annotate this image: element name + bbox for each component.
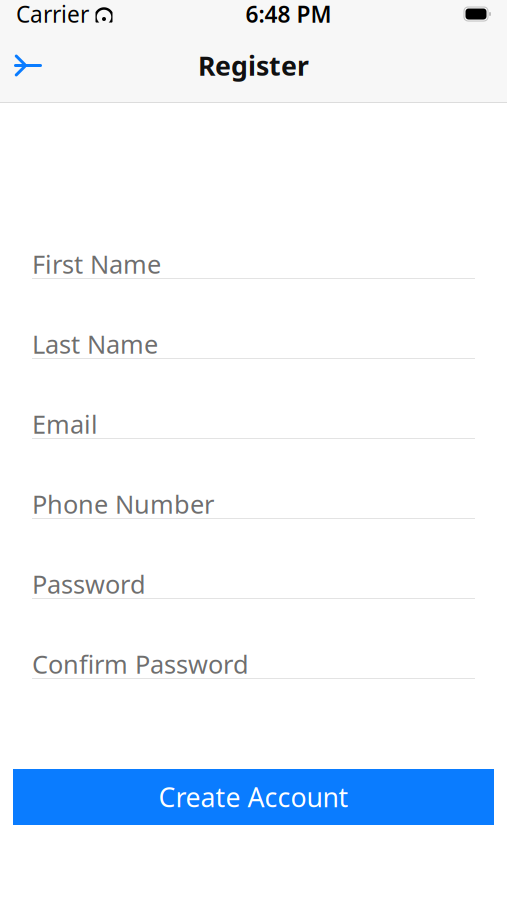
staticText: Register [198, 48, 309, 83]
button[interactable]: Email [32, 410, 475, 490]
staticText: Password [32, 567, 146, 601]
staticText: Carrier [16, 0, 89, 29]
button[interactable]: Phone Number [32, 490, 475, 570]
staticText: 6:48 PM [245, 0, 331, 29]
staticText: First Name [32, 247, 161, 281]
button[interactable]: Password [32, 570, 475, 650]
button[interactable]: Back [0, 37, 56, 93]
button[interactable]: Confirm Password [32, 650, 475, 730]
staticText: Last Name [32, 327, 158, 361]
button[interactable]: Create Account [13, 769, 494, 825]
staticText: Create Account [158, 779, 348, 815]
button[interactable]: First Name [32, 250, 475, 330]
staticText: Email [32, 407, 98, 441]
staticText: Confirm Password [32, 647, 249, 681]
staticText: Phone Number [32, 487, 214, 521]
button[interactable]: Last Name [32, 330, 475, 410]
